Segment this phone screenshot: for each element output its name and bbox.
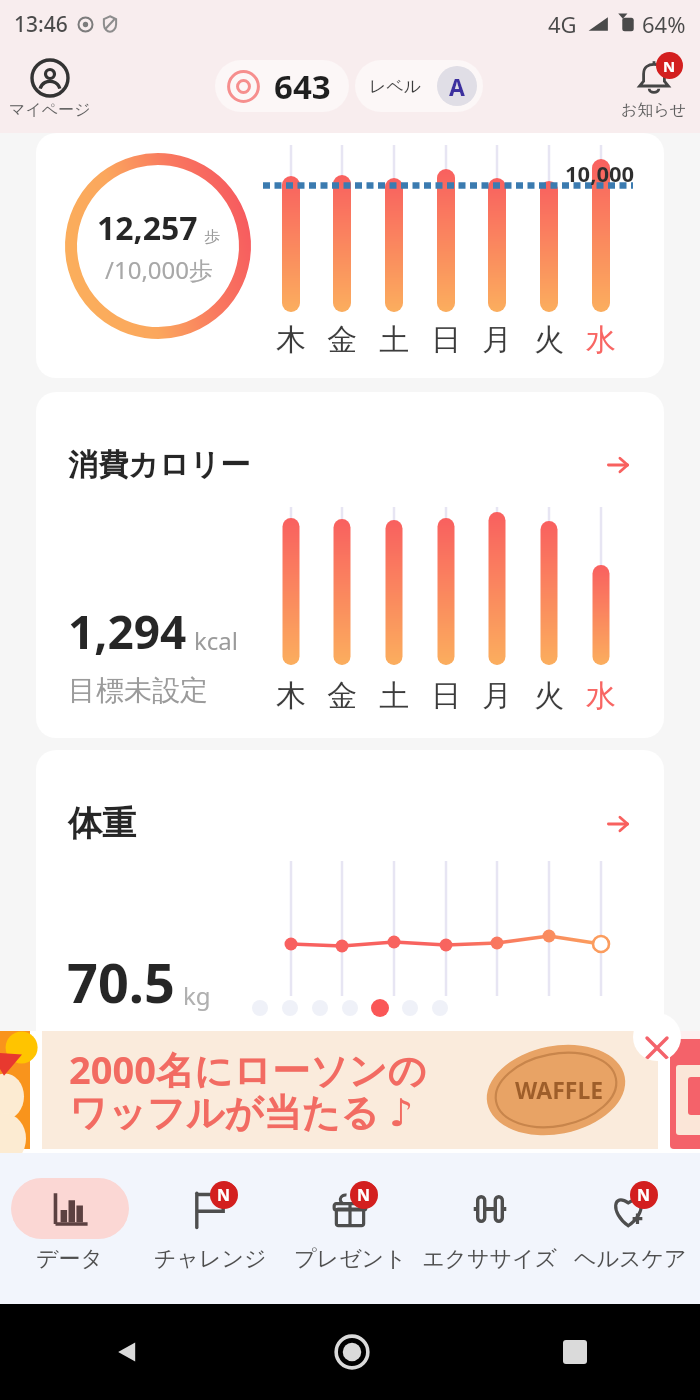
button[interactable]: 消費カロリー [36,392,664,738]
staticText: N [637,1184,651,1206]
staticText: 火 [534,677,564,715]
button[interactable]: N [560,1153,700,1288]
staticText: お知らせ [621,100,687,120]
staticText: WAFFLE [515,1074,604,1105]
button[interactable]: Recents [560,1337,590,1367]
staticText: ワッフルが当たる ♪ [69,1085,414,1137]
button[interactable]: お知らせ [618,57,690,121]
staticText: 2000名にローソンの [69,1043,427,1095]
staticText: 歩 [204,227,220,247]
button[interactable]: N [140,1153,280,1288]
staticText: 10,000 [565,158,635,188]
staticText: 4G [548,9,577,39]
staticText: 70.5 [67,945,175,1019]
staticText: N [217,1184,231,1206]
button[interactable]: 閉じる [633,1013,681,1061]
staticText: 金 [327,677,357,715]
staticText: 土 [379,321,409,359]
button[interactable]: エクササイズ [420,1153,560,1288]
staticText: エクササイズ [422,1245,558,1273]
staticText: 日 [431,321,461,359]
staticText: データ [36,1245,104,1273]
staticText: A [449,71,465,102]
staticText: N [357,1184,371,1206]
staticText: 木 [276,677,306,715]
staticText: 火 [534,321,564,359]
button[interactable]: 12,257 [36,133,664,378]
staticText: レベル [369,76,422,97]
button[interactable]: 体重 [36,750,664,1031]
button[interactable]: 2000名にローソンの [42,1031,658,1149]
staticText: 目標未設定 [68,673,208,708]
button[interactable]: Back [110,1335,144,1369]
staticText: 64% [642,9,686,39]
staticText: kcal [194,624,238,657]
staticText: 1,294 [68,600,187,663]
staticText: 643 [274,64,331,109]
staticText: ヘルスケア [574,1245,687,1273]
button[interactable]: データ [0,1153,140,1288]
button[interactable]: Home [330,1330,374,1374]
staticText: 12,257 [97,206,198,250]
button[interactable]: マイページ [6,57,94,121]
staticText: 月 [482,677,512,715]
staticText: 木 [276,321,306,359]
staticText: 日 [431,677,461,715]
button[interactable]: 643 [215,60,349,112]
staticText: N [663,56,676,76]
staticText: 土 [379,677,409,715]
staticText: 消費カロリー [68,446,251,484]
staticText: 月 [482,321,512,359]
staticText: 水 [586,321,616,359]
staticText: プレゼント [294,1245,407,1273]
staticText: kg [183,979,211,1012]
staticText: /10,000歩 [105,253,213,286]
button[interactable]: N [280,1153,420,1288]
staticText: 体重 [68,802,136,845]
button[interactable]: レベル [355,60,483,112]
staticText: 金 [327,321,357,359]
staticText: 水 [586,677,616,715]
staticText: 13:46 [14,10,68,39]
staticText: チャレンジ [154,1245,267,1273]
staticText: マイページ [9,100,91,120]
